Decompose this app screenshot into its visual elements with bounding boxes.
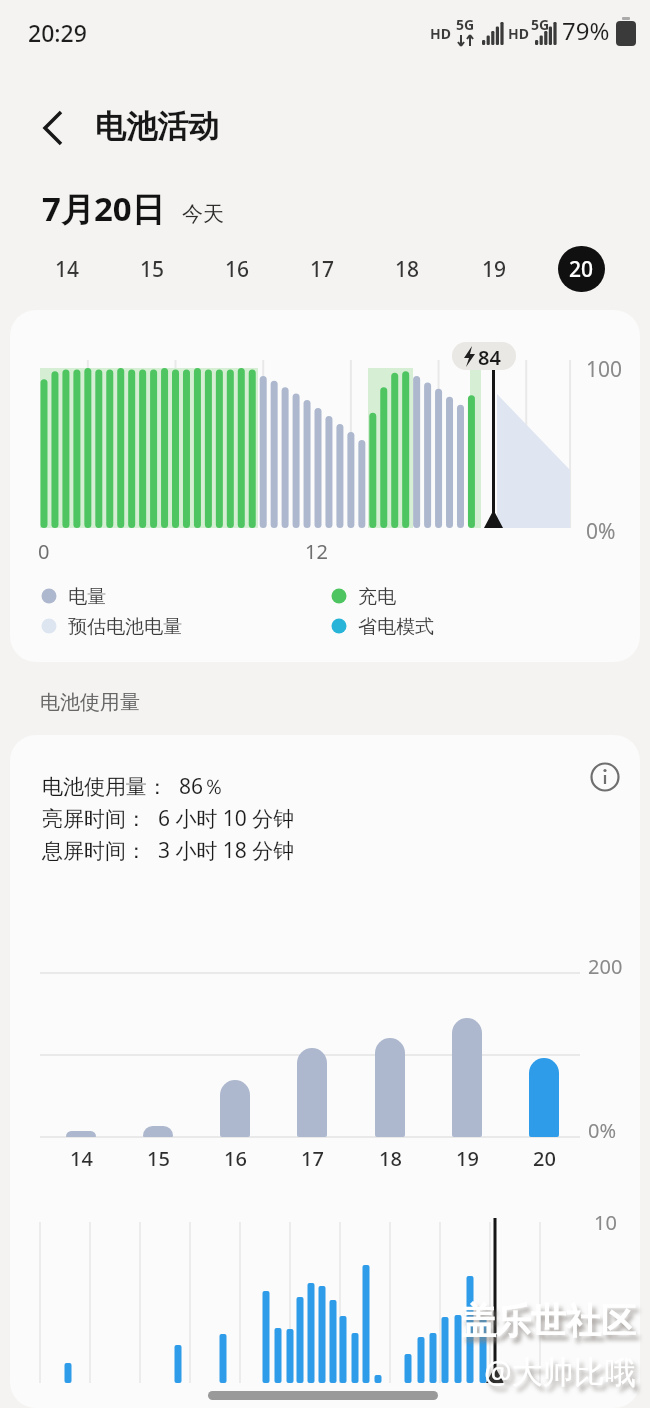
button[interactable]: 20	[558, 246, 605, 292]
staticText: 电池使用量	[40, 690, 140, 715]
button[interactable]	[30, 104, 78, 152]
staticText: 省电模式	[358, 615, 434, 639]
staticText: 盖乐世社区	[461, 1299, 636, 1343]
staticText: 18	[379, 1145, 402, 1172]
staticText: 17	[301, 1145, 324, 1172]
staticText: 5G	[531, 15, 550, 34]
staticText: 电池活动	[95, 107, 219, 146]
staticText: 亮屏时间： 6 小时 10 分钟	[42, 804, 295, 833]
staticText: 17	[310, 255, 335, 284]
staticText: 100	[586, 355, 623, 384]
staticText: 10	[594, 1209, 617, 1236]
staticText: HD	[430, 24, 451, 43]
button[interactable]: 16	[207, 246, 267, 292]
staticText: 16	[224, 1145, 247, 1172]
staticText: 今天	[182, 201, 224, 227]
staticText: 电池使用量： 86％	[42, 772, 224, 801]
staticText: 200	[588, 953, 623, 980]
staticText: 7月20日	[42, 186, 165, 231]
button[interactable]: 17	[292, 246, 352, 292]
staticText: 20	[533, 1145, 556, 1172]
staticText: 20	[569, 255, 594, 284]
staticText: 5G	[456, 15, 475, 34]
button[interactable]: 14	[37, 246, 97, 292]
staticText: 20:29	[28, 17, 87, 48]
staticText: 84	[478, 344, 501, 371]
staticText: 0	[38, 538, 50, 565]
staticText: 0%	[588, 1117, 617, 1144]
staticText: 预估电池电量	[68, 615, 182, 639]
staticText: 14	[70, 1145, 93, 1172]
staticText: 19	[482, 255, 507, 284]
button[interactable]: 18	[377, 246, 437, 292]
button[interactable]	[585, 757, 625, 797]
staticText: 15	[147, 1145, 170, 1172]
staticText: 18	[395, 255, 420, 284]
staticText: 15	[140, 255, 165, 284]
staticText: 12	[305, 538, 328, 565]
staticText: 14	[55, 255, 80, 284]
staticText: 16	[225, 255, 250, 284]
staticText: HD	[508, 24, 529, 43]
button[interactable]: 15	[122, 246, 182, 292]
staticText: 79%	[562, 14, 610, 47]
staticText: 息屏时间： 3 小时 18 分钟	[42, 836, 295, 865]
staticText: 充电	[358, 585, 396, 609]
button[interactable]: 19	[464, 246, 524, 292]
staticText: 0%	[586, 517, 616, 546]
staticText: 电量	[68, 585, 106, 609]
staticText: 19	[456, 1145, 479, 1172]
staticText: @大帅比哦	[484, 1350, 636, 1392]
